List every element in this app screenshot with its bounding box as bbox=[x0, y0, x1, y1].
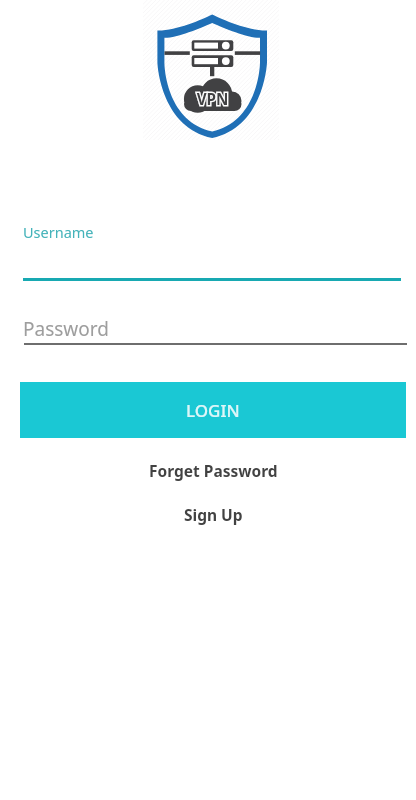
staticText: Forget Password bbox=[149, 460, 278, 481]
staticText: Password bbox=[23, 316, 109, 342]
staticText: LOGIN bbox=[186, 399, 240, 422]
staticText: Sign Up bbox=[184, 504, 243, 525]
staticText: Username bbox=[23, 222, 94, 242]
button[interactable]: Forget Password bbox=[20, 455, 406, 485]
button[interactable]: Sign Up bbox=[20, 499, 406, 529]
button[interactable]: LOGIN bbox=[20, 382, 406, 438]
